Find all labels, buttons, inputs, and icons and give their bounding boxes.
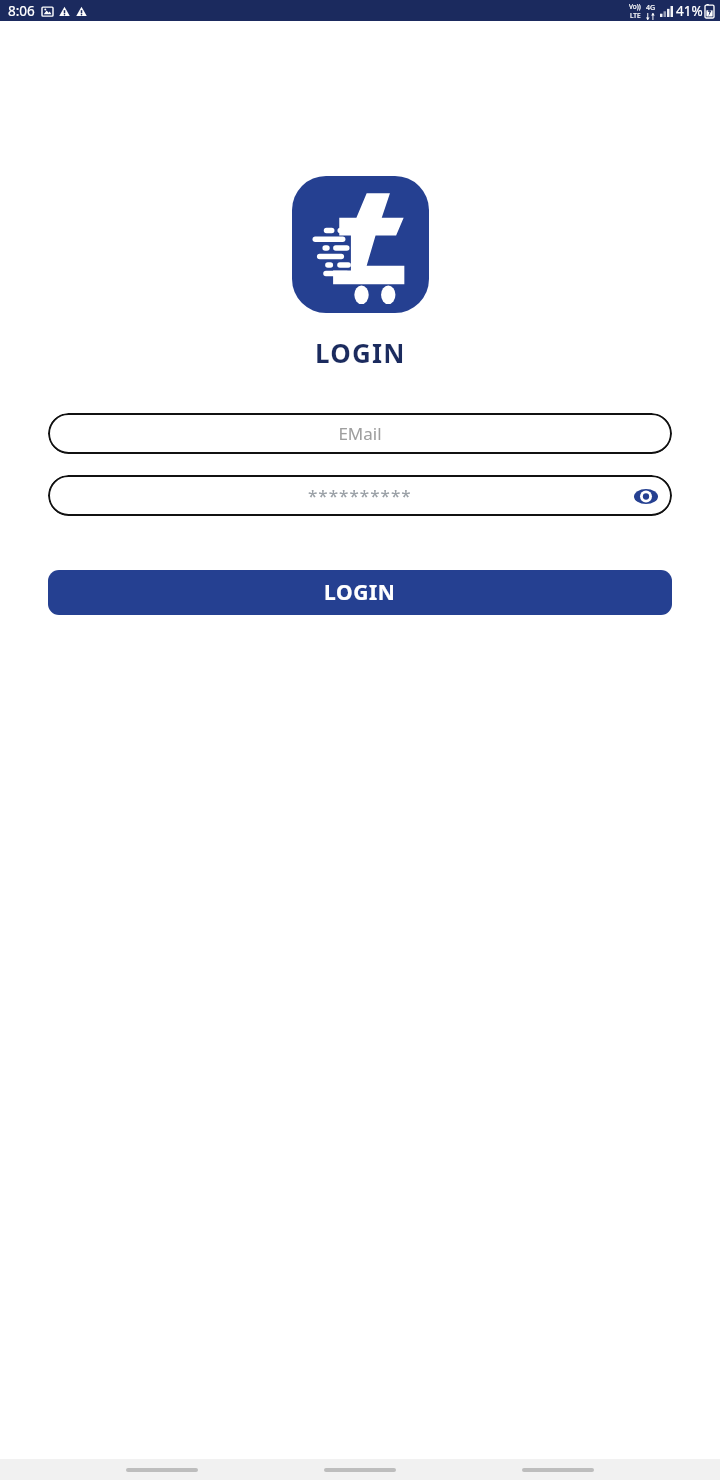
staticText: 8:06 — [8, 2, 35, 20]
staticText: 41% — [676, 2, 703, 20]
staticText: LOGIN — [324, 578, 396, 607]
button[interactable]: Navigation — [324, 1468, 396, 1472]
staticText: LOGIN — [315, 335, 406, 370]
staticText: Vo)) — [629, 2, 641, 11]
button[interactable]: LOGIN — [48, 570, 672, 615]
staticText: ********** — [308, 484, 412, 507]
button[interactable]: EMail — [48, 413, 672, 454]
button[interactable]: Show password — [630, 480, 662, 512]
staticText: EMail — [338, 422, 382, 445]
button[interactable]: Navigation — [126, 1468, 198, 1472]
staticText: 4G — [646, 3, 656, 13]
button[interactable]: Navigation — [522, 1468, 594, 1472]
other: App logo — [292, 176, 429, 313]
staticText: LTE — [630, 11, 641, 20]
button[interactable]: ********** — [48, 475, 672, 516]
